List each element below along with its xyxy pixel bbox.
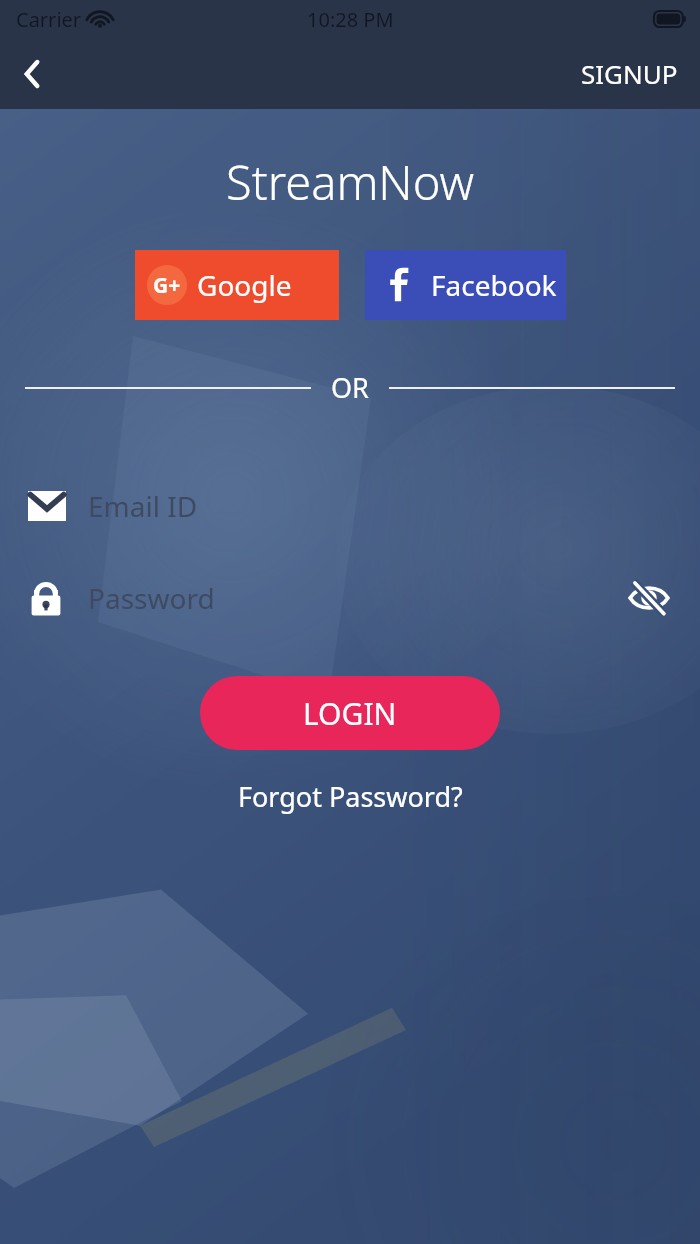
staticText: LOGIN bbox=[303, 693, 397, 734]
button[interactable]: Password bbox=[0, 562, 700, 634]
staticText: 10:28 PM bbox=[307, 6, 394, 33]
button[interactable]: Show password bbox=[622, 571, 676, 625]
staticText: SIGNUP bbox=[581, 56, 678, 91]
staticText: Facebook bbox=[431, 266, 557, 304]
staticText: OR bbox=[331, 369, 369, 406]
button[interactable]: LOGIN bbox=[200, 676, 500, 750]
button[interactable]: Facebook bbox=[365, 250, 566, 320]
staticText: StreamNow bbox=[226, 150, 474, 214]
staticText: G+ bbox=[153, 271, 181, 300]
staticText: Email ID bbox=[88, 487, 198, 525]
staticText: Carrier bbox=[16, 6, 82, 33]
button[interactable]: G+ bbox=[135, 250, 339, 320]
button[interactable]: Forgot Password? bbox=[222, 772, 479, 821]
staticText: Password bbox=[88, 579, 215, 617]
staticText: Forgot Password? bbox=[238, 778, 463, 815]
button[interactable]: SIGNUP bbox=[559, 42, 700, 105]
staticText: Google bbox=[197, 266, 292, 304]
button[interactable]: Email ID bbox=[0, 470, 700, 542]
button[interactable]: Back bbox=[0, 42, 64, 106]
